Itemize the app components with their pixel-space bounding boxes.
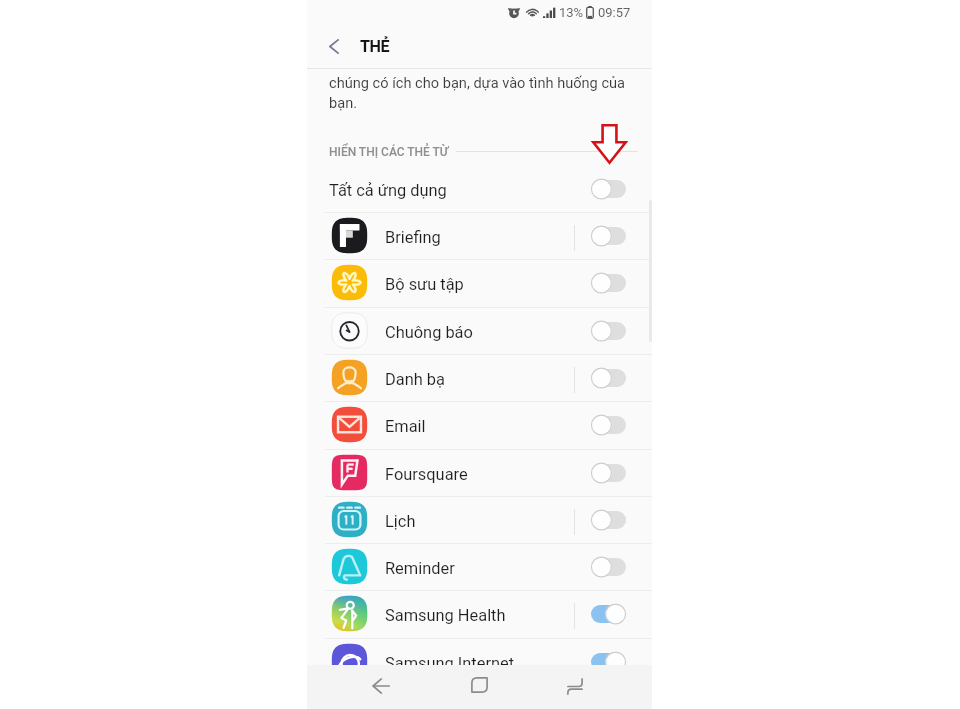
button[interactable]: Recents: [556, 667, 594, 705]
button[interactable]: Lịch off: [589, 505, 628, 535]
button[interactable]: Bộ sưu tập: [307, 259, 652, 306]
staticText: HIỂN THỊ CÁC THẺ TỪ: [329, 145, 449, 159]
button[interactable]: Samsung Internet on: [589, 647, 628, 677]
button[interactable]: Chuông báo: [307, 307, 652, 354]
button[interactable]: Foursquare: [307, 449, 652, 496]
staticText: Samsung Internet: [385, 654, 515, 673]
staticText: 09:57: [598, 5, 631, 20]
button[interactable]: Tất cả ứng dụng: [307, 165, 652, 212]
staticText: Chuông báo: [385, 323, 473, 342]
staticText: Bộ sưu tập: [385, 275, 464, 294]
button[interactable]: Danh bạ off: [589, 363, 628, 393]
button[interactable]: Foursquare off: [589, 458, 628, 488]
button[interactable]: Danh bạ: [307, 354, 652, 401]
staticText: Foursquare: [385, 465, 468, 484]
staticText: Tất cả ứng dụng: [329, 181, 447, 200]
button[interactable]: Reminder off: [589, 552, 628, 582]
staticText: THẺ: [360, 37, 390, 56]
staticText: 13%: [559, 5, 584, 20]
staticText: Lịch: [385, 512, 416, 531]
button[interactable]: Email off: [589, 410, 628, 440]
button[interactable]: Samsung Health on: [589, 599, 628, 629]
staticText: Reminder: [385, 559, 455, 578]
button[interactable]: Samsung Internet: [307, 638, 652, 685]
button[interactable]: Reminder: [307, 543, 652, 590]
staticText: Briefing: [385, 228, 441, 247]
staticText: Email: [385, 417, 426, 436]
staticText: chúng có ích cho bạn, dựa vào tình huống…: [329, 74, 626, 91]
button[interactable]: Tất cả ứng dụng off: [589, 174, 628, 204]
button[interactable]: Briefing off: [589, 221, 628, 251]
button[interactable]: Lịch: [307, 496, 652, 543]
button[interactable]: Email: [307, 401, 652, 448]
button[interactable]: Back: [316, 28, 352, 64]
staticText: Danh bạ: [385, 370, 445, 389]
button[interactable]: Samsung Health: [307, 590, 652, 637]
button[interactable]: Briefing: [307, 212, 652, 259]
button[interactable]: Bộ sưu tập off: [589, 268, 628, 298]
button[interactable]: Back: [362, 667, 400, 705]
button[interactable]: Chuông báo off: [589, 316, 628, 346]
staticText: bạn.: [329, 94, 358, 111]
button[interactable]: Home: [460, 666, 498, 704]
staticText: Samsung Health: [385, 606, 506, 625]
